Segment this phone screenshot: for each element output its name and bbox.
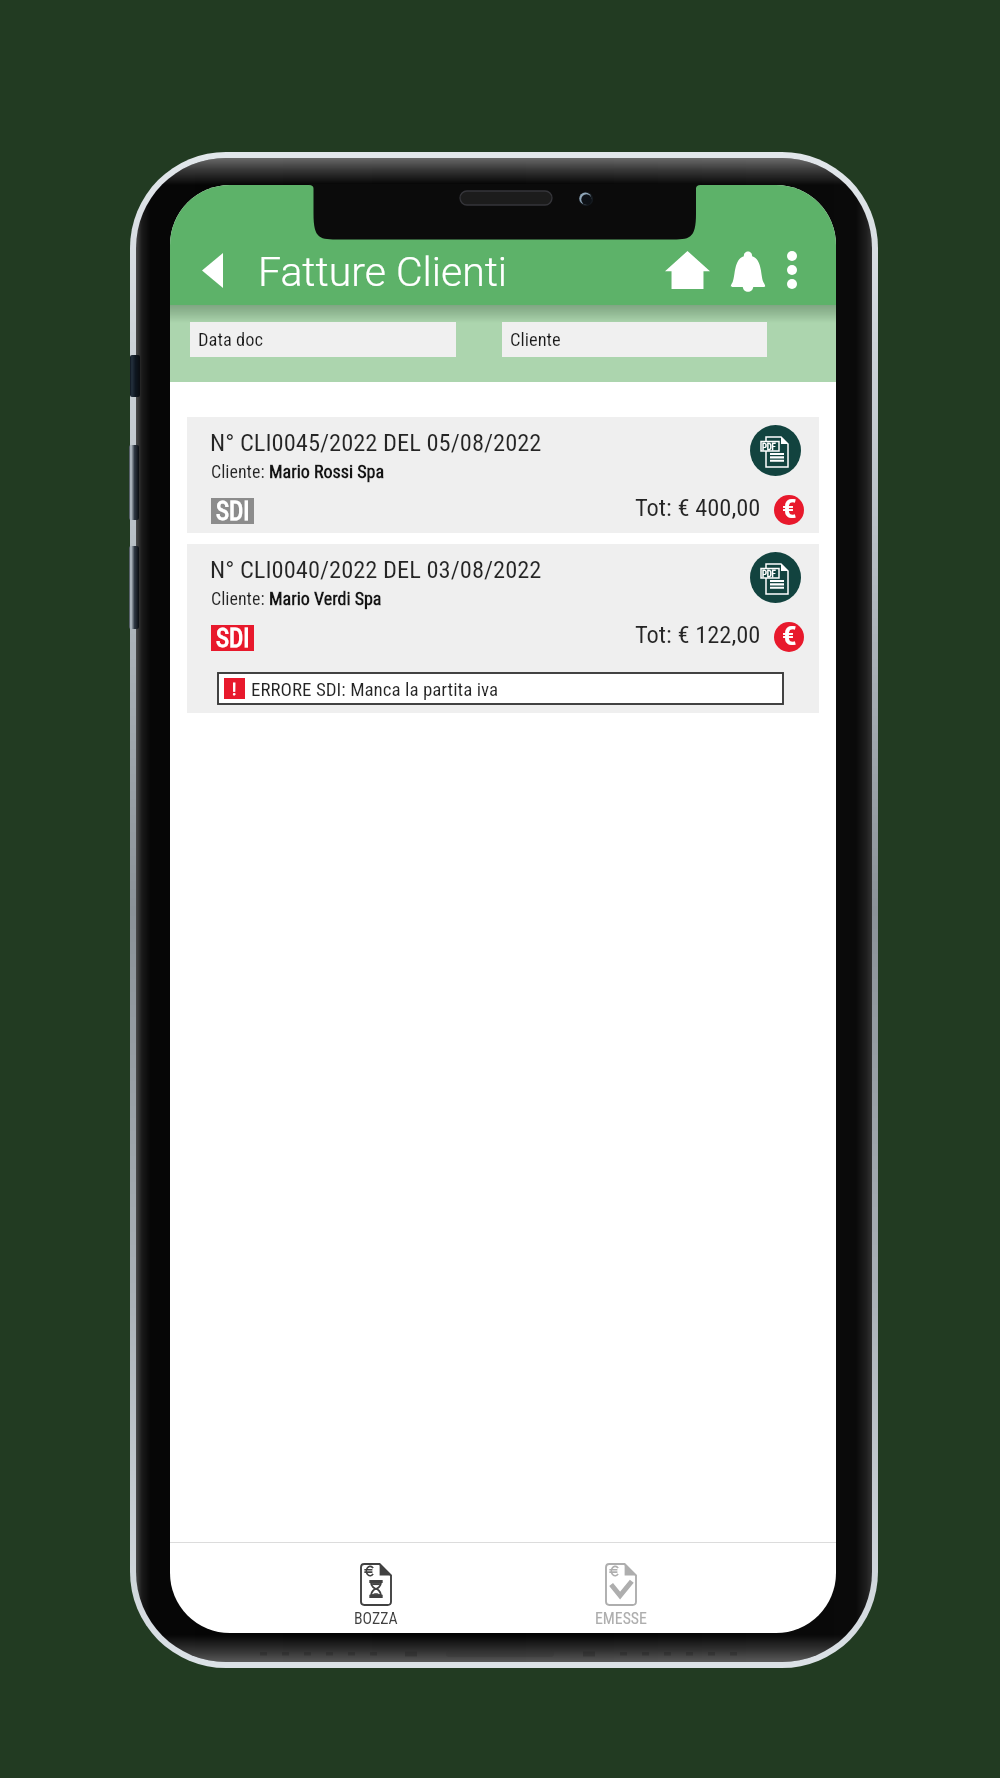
- staticText: Mario Rossi Spa: [269, 461, 385, 482]
- staticText: BOZZA: [354, 1609, 398, 1628]
- staticText: SDI: [216, 624, 250, 650]
- staticText: Fatture Clienti: [258, 248, 508, 296]
- staticText: €: [782, 495, 797, 524]
- staticText: PDF: [762, 442, 776, 452]
- button[interactable]: Back: [192, 243, 233, 298]
- staticText: Tot: € 400,00: [635, 493, 761, 522]
- staticText: EMESSE: [595, 1609, 647, 1628]
- staticText: Data doc: [198, 329, 264, 351]
- button[interactable]: Open PDF document: [750, 425, 801, 476]
- staticText: N° CLI0040/2022 DEL 03/08/2022: [210, 555, 542, 584]
- staticText: €: [782, 622, 797, 651]
- staticText: !: [232, 679, 237, 699]
- staticText: ERRORE SDI: Manca la partita iva: [251, 678, 499, 700]
- button[interactable]: Notifications: [722, 243, 774, 297]
- button[interactable]: Home: [657, 243, 718, 297]
- staticText: N° CLI0045/2022 DEL 05/08/2022: [210, 428, 542, 457]
- staticText: PDF: [762, 569, 776, 579]
- button[interactable]: N° CLI0045/2022 DEL 05/08/2022: [187, 417, 819, 533]
- button[interactable]: BOZZA: [330, 1543, 422, 1633]
- staticText: SDI: [216, 497, 250, 523]
- button[interactable]: Cliente: [502, 322, 767, 357]
- staticText: Mario Verdi Spa: [269, 588, 382, 609]
- button[interactable]: N° CLI0040/2022 DEL 03/08/2022: [187, 544, 819, 713]
- button[interactable]: EMESSE: [575, 1543, 667, 1633]
- staticText: Cliente: [510, 329, 561, 351]
- staticText: Tot: € 122,00: [635, 620, 761, 649]
- button[interactable]: Open PDF document: [750, 552, 801, 603]
- button[interactable]: Data doc: [190, 322, 456, 357]
- staticText: Cliente:: [211, 588, 269, 609]
- button[interactable]: More options: [767, 243, 817, 297]
- staticText: Cliente:: [211, 461, 269, 482]
